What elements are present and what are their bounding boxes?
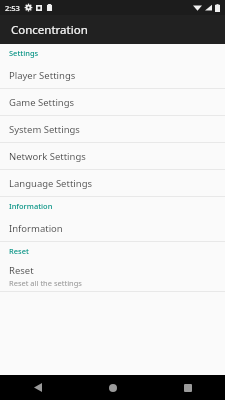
staticText: Reset: [9, 246, 29, 256]
staticText: Player Settings: [9, 69, 76, 82]
staticText: Reset: [9, 264, 34, 277]
staticText: Reset all the settings: [9, 278, 82, 288]
staticText: Game Settings: [9, 96, 75, 109]
button[interactable]: Network Settings: [0, 143, 225, 169]
button[interactable]: Home: [75, 375, 150, 400]
button[interactable]: Game Settings: [0, 89, 225, 115]
staticText: Concentration: [11, 22, 88, 38]
staticText: Information: [9, 201, 53, 211]
staticText: System Settings: [9, 123, 80, 136]
button[interactable]: Recent apps: [150, 375, 225, 400]
staticText: Information: [9, 222, 63, 235]
button[interactable]: Back: [0, 375, 75, 400]
button[interactable]: Language Settings: [0, 170, 225, 196]
staticText: Network Settings: [9, 150, 86, 163]
staticText: 2:53: [5, 3, 20, 13]
button[interactable]: Reset: [0, 260, 225, 291]
button[interactable]: Information: [0, 215, 225, 241]
staticText: Settings: [9, 48, 39, 58]
button[interactable]: System Settings: [0, 116, 225, 142]
button[interactable]: Player Settings: [0, 62, 225, 88]
staticText: Language Settings: [9, 177, 93, 190]
